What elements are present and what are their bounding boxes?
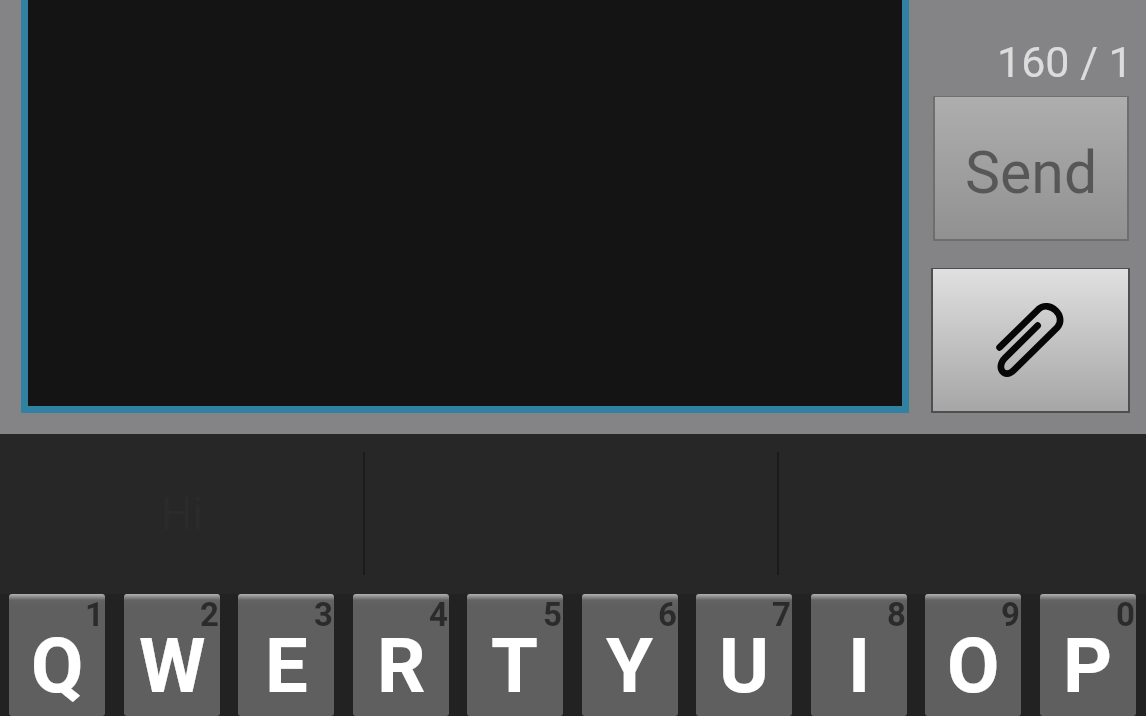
button[interactable]: 4 <box>353 594 449 716</box>
staticText: T <box>491 621 539 710</box>
staticText: Send <box>965 138 1098 207</box>
staticText: 9 <box>1001 595 1020 634</box>
staticText: E <box>265 621 308 710</box>
staticText: 5 <box>543 595 562 634</box>
button[interactable]: Send <box>935 97 1127 239</box>
staticText: 3 <box>314 595 333 634</box>
button[interactable]: 2 <box>124 594 220 716</box>
button[interactable]: 0 <box>1040 594 1136 716</box>
button[interactable]: 7 <box>696 594 792 716</box>
button[interactable]: 6 <box>582 594 678 716</box>
staticText: 8 <box>887 595 906 634</box>
button[interactable]: 5 <box>467 594 563 716</box>
staticText: 2 <box>200 595 219 634</box>
staticText: 0 <box>1116 595 1135 634</box>
staticText: Y <box>606 621 654 710</box>
staticText: 1 <box>85 595 104 634</box>
staticText: 160 / 1 <box>997 37 1133 87</box>
staticText: 7 <box>772 595 791 634</box>
staticText: R <box>377 621 426 710</box>
staticText: 4 <box>429 595 448 634</box>
staticText: O <box>947 621 1000 710</box>
staticText: U <box>719 621 770 710</box>
button[interactable]: 9 <box>925 594 1021 716</box>
staticText: I <box>848 621 871 710</box>
button[interactable]: 1 <box>9 594 105 716</box>
staticText: Q <box>31 621 84 710</box>
button[interactable]: 8 <box>811 594 907 716</box>
staticText: P <box>1063 621 1113 710</box>
staticText: 6 <box>658 595 677 634</box>
staticText: W <box>139 621 206 710</box>
button[interactable]: Attach <box>933 269 1128 411</box>
button[interactable]: 3 <box>238 594 334 716</box>
